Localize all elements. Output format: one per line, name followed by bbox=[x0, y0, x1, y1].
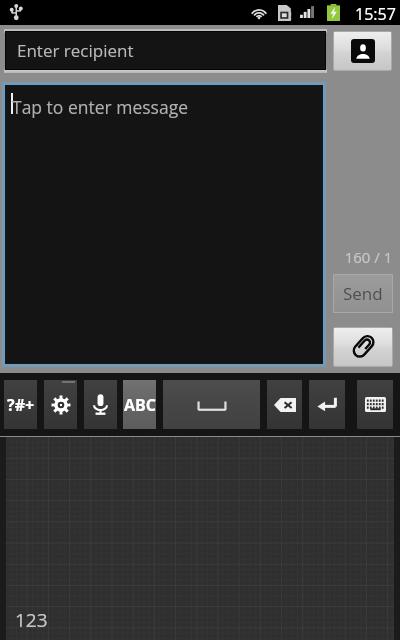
staticText: 15:57 bbox=[355, 3, 396, 25]
button[interactable]: kbd bbox=[357, 380, 393, 429]
staticText: 160 / 1 bbox=[338, 247, 399, 267]
button[interactable]: Choose contact bbox=[334, 32, 391, 70]
button[interactable]: Attach bbox=[334, 328, 392, 366]
staticText: Send bbox=[343, 282, 383, 305]
staticText: ?#+ bbox=[7, 394, 35, 416]
button[interactable]: Tap to enter message bbox=[6, 86, 322, 363]
button[interactable]: enter bbox=[309, 380, 345, 429]
button[interactable]: Send bbox=[334, 275, 392, 312]
button[interactable]: sym bbox=[4, 380, 37, 429]
button[interactable]: mic bbox=[84, 380, 117, 429]
button[interactable]: Handwriting input area bbox=[0, 437, 400, 640]
button[interactable]: del bbox=[267, 380, 302, 429]
button[interactable]: Enter recipient bbox=[6, 32, 325, 69]
button[interactable]: space bbox=[163, 380, 260, 429]
button[interactable]: gear bbox=[44, 380, 77, 429]
staticText: 123 bbox=[15, 607, 48, 633]
staticText: ABC bbox=[124, 394, 156, 416]
button[interactable]: abc bbox=[123, 380, 156, 429]
staticText: Tap to enter message bbox=[12, 95, 189, 119]
staticText: Enter recipient bbox=[17, 39, 134, 62]
